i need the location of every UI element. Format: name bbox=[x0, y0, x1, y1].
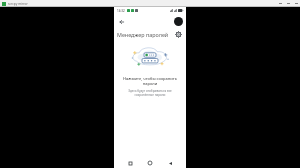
button[interactable]: Окно bbox=[279, 2, 282, 5]
button[interactable]: Настройки bbox=[174, 30, 183, 39]
button[interactable]: Аккаунт bbox=[174, 17, 183, 26]
button[interactable]: Окно bbox=[287, 2, 290, 5]
button[interactable]: Назад bbox=[116, 16, 127, 27]
button[interactable]: Обзор bbox=[126, 159, 134, 167]
staticText: 14:32 bbox=[117, 9, 125, 13]
staticText: Нажмите, чтобы сохранить пароли bbox=[120, 76, 180, 86]
staticText: Менеджер паролей bbox=[117, 31, 169, 38]
button[interactable]: Главный экран bbox=[146, 159, 154, 167]
staticText: scrcpy mirror bbox=[8, 2, 28, 6]
staticText: Здесь будут отображаться все сохранённые… bbox=[119, 89, 181, 97]
button[interactable]: Назад bbox=[166, 159, 174, 167]
button[interactable]: Окно bbox=[295, 2, 298, 5]
